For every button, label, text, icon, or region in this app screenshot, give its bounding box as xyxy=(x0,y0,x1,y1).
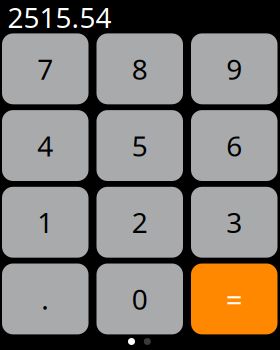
button[interactable]: 5 xyxy=(96,110,183,181)
staticText: 0 xyxy=(132,280,148,318)
staticText: 6 xyxy=(226,127,242,164)
staticText: 1 xyxy=(37,204,53,241)
button[interactable]: 2 xyxy=(96,187,183,258)
button[interactable]: 9 xyxy=(191,33,277,104)
button[interactable]: 3 xyxy=(191,187,277,258)
staticText: 7 xyxy=(37,50,53,87)
staticText: 5 xyxy=(132,127,148,164)
staticText: 4 xyxy=(37,127,53,164)
staticText: . xyxy=(41,280,49,318)
button[interactable]: 4 xyxy=(2,110,88,181)
button[interactable]: = xyxy=(191,263,277,334)
button[interactable]: 7 xyxy=(2,33,88,104)
button[interactable]: 6 xyxy=(191,110,277,181)
button[interactable]: . xyxy=(2,263,88,334)
staticText: 8 xyxy=(132,50,148,87)
staticText: 3 xyxy=(226,204,242,241)
button[interactable]: 1 xyxy=(2,187,88,258)
staticText: = xyxy=(226,279,243,318)
staticText: 2515.54 xyxy=(7,0,111,36)
button[interactable]: 0 xyxy=(96,263,183,334)
button[interactable]: 8 xyxy=(96,33,183,104)
staticText: 2 xyxy=(132,204,148,241)
staticText: 9 xyxy=(226,50,242,87)
